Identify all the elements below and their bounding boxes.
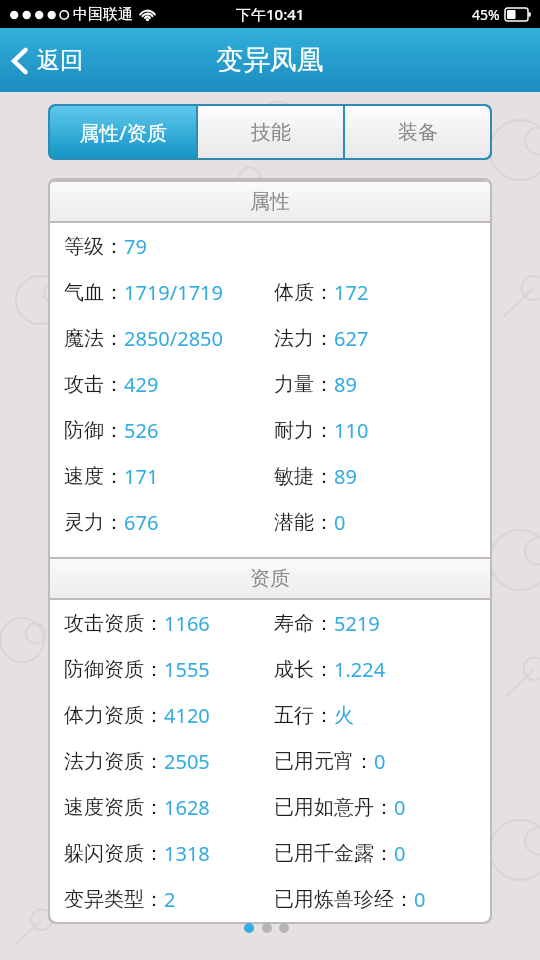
staticText: ： [104,280,124,305]
staticText: ： [374,795,394,820]
button[interactable]: 属性/资质 [50,106,196,158]
staticText: ： [104,510,124,535]
staticText: ： [104,326,124,351]
staticText: 速度资质 [64,795,144,820]
staticText: 429 [124,371,159,398]
staticText: 172 [334,279,369,306]
staticText: 1628 [164,794,210,821]
staticText: ： [104,464,124,489]
staticText: 耐力 [274,418,314,443]
staticText: ： [314,418,334,443]
staticText: 防御 [64,418,104,443]
staticText: 体质 [274,280,314,305]
staticText: 灵力 [64,510,104,535]
staticText: 敏捷 [274,464,314,489]
staticText: 下午10:41 [236,4,305,24]
staticText: 已用炼兽珍经 [274,887,394,912]
staticText: 防御资质 [64,657,144,682]
staticText: 属性 [250,189,290,214]
staticText: 攻击 [64,372,104,397]
staticText: ： [354,749,374,774]
staticText: 力量 [274,372,314,397]
staticText: 寿命 [274,611,314,636]
staticText: 资质 [250,566,290,591]
staticText: 5219 [334,610,380,637]
staticText: ： [104,234,124,259]
staticText: ： [314,611,334,636]
staticText: 速度 [64,464,104,489]
staticText: 0 [394,840,406,867]
staticText: 1555 [164,656,210,683]
staticText: 171 [124,463,159,490]
staticText: 4120 [164,702,210,729]
staticText: ： [314,372,334,397]
button[interactable]: 返回 [0,38,97,83]
staticText: ： [144,795,164,820]
staticText: 0 [394,794,406,821]
staticText: 1719/1719 [124,279,223,306]
staticText: 攻击资质 [64,611,144,636]
staticText: 中国联通 [73,5,133,24]
staticText: 法力资质 [64,749,144,774]
staticText: ： [374,841,394,866]
button[interactable]: 装备 [345,106,490,158]
staticText: ： [104,418,124,443]
staticText: ： [314,510,334,535]
staticText: 变异凤凰 [216,43,324,77]
staticText: ： [314,464,334,489]
staticText: 0 [334,509,346,536]
staticText: ： [314,280,334,305]
staticText: ： [144,703,164,728]
staticText: 返回 [37,46,83,75]
staticText: 等级 [64,234,104,259]
staticText: 1.224 [334,656,386,683]
staticText: ： [144,887,164,912]
staticText: 体力资质 [64,703,144,728]
staticText: 法力 [274,326,314,351]
staticText: 成长 [274,657,314,682]
staticText: ： [394,887,414,912]
staticText: 1166 [164,610,210,637]
staticText: 0 [414,886,426,913]
staticText: 1318 [164,840,210,867]
staticText: 79 [124,233,147,260]
button[interactable]: 技能 [198,106,343,158]
staticText: 676 [124,509,159,536]
staticText: 潜能 [274,510,314,535]
staticText: 已用如意丹 [274,795,374,820]
staticText: 属性/资质 [79,119,167,146]
staticText: 技能 [251,120,291,145]
staticText: 110 [334,417,369,444]
staticText: 2850/2850 [124,325,223,352]
staticText: 0 [374,748,386,775]
staticText: 气血 [64,280,104,305]
staticText: ： [314,657,334,682]
staticText: 89 [334,463,357,490]
staticText: ： [144,841,164,866]
staticText: ： [144,657,164,682]
staticText: 变异类型 [64,887,144,912]
staticText: 627 [334,325,369,352]
staticText: 526 [124,417,159,444]
staticText: 2 [164,886,176,913]
staticText: ： [104,372,124,397]
staticText: 火 [334,703,354,728]
staticText: 躲闪资质 [64,841,144,866]
staticText: 2505 [164,748,210,775]
staticText: 装备 [398,120,438,145]
staticText: ： [314,326,334,351]
staticText: ： [144,611,164,636]
staticText: 已用元宵 [274,749,354,774]
staticText: ： [144,749,164,774]
staticText: 五行 [274,703,314,728]
staticText: ： [314,703,334,728]
staticText: 89 [334,371,357,398]
staticText: 魔法 [64,326,104,351]
staticText: 已用千金露 [274,841,374,866]
staticText: 45% [472,5,500,24]
